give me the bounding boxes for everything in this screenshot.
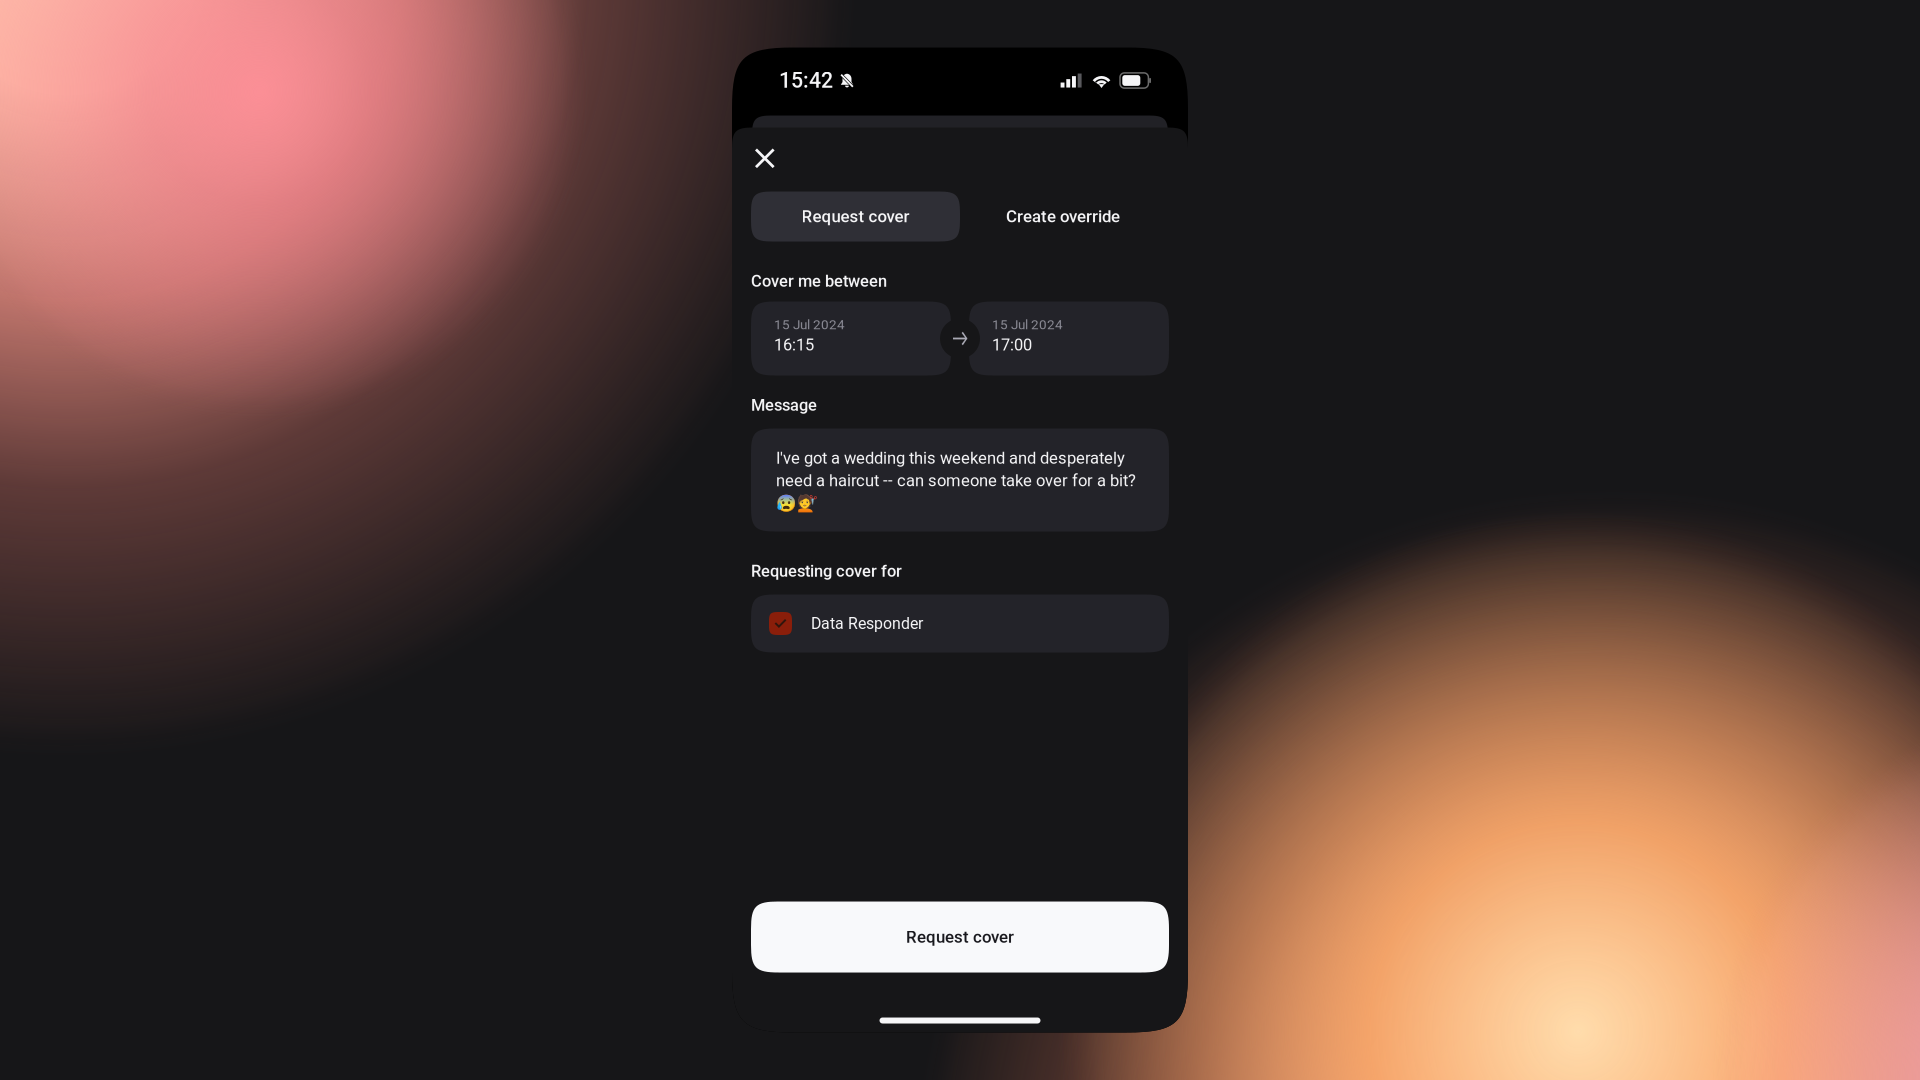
staticText: 16:15: [774, 335, 814, 354]
staticText: 15 Jul 2024: [774, 317, 845, 332]
staticText: Request cover: [801, 207, 909, 226]
button[interactable]: Data Responder: [751, 594, 1169, 652]
staticText: Create override: [1006, 207, 1120, 226]
staticText: 15:42: [779, 68, 833, 93]
staticText: Data Responder: [811, 614, 923, 633]
staticText: 17:00: [992, 335, 1032, 354]
button[interactable]: Close: [744, 137, 790, 181]
button[interactable]: Request cover: [751, 901, 1169, 972]
staticText: Request cover: [906, 927, 1014, 947]
button[interactable]: Request cover: [751, 191, 960, 241]
button[interactable]: Create override: [960, 191, 1166, 241]
staticText: I've got a wedding this weekend and desp…: [776, 448, 1136, 513]
button[interactable]: 15 Jul 2024: [969, 301, 1169, 375]
button[interactable]: 15 Jul 2024: [751, 301, 951, 375]
staticText: Requesting cover for: [751, 561, 902, 581]
staticText: Message: [751, 395, 817, 415]
staticText: Cover me between: [751, 271, 887, 291]
staticText: 15 Jul 2024: [992, 317, 1063, 332]
